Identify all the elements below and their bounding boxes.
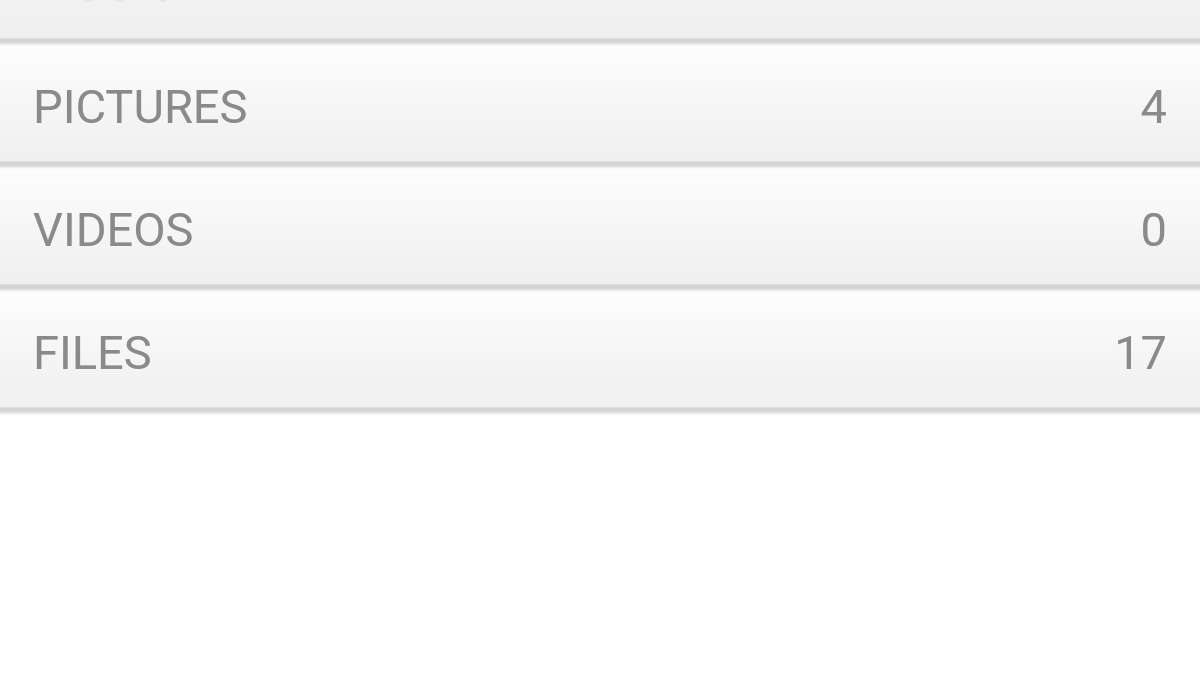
button[interactable]: PICTURES: [0, 46, 1200, 160]
button[interactable]: VIDEOS: [0, 169, 1200, 283]
staticText: 4: [1140, 79, 1167, 134]
staticText: FILES: [33, 325, 152, 380]
staticText: 0: [1140, 202, 1167, 257]
button[interactable]: FILES: [0, 292, 1200, 406]
staticText: PICTURES: [33, 79, 248, 134]
staticText: VIDEOS: [33, 202, 194, 257]
staticText: 17: [1114, 325, 1167, 380]
